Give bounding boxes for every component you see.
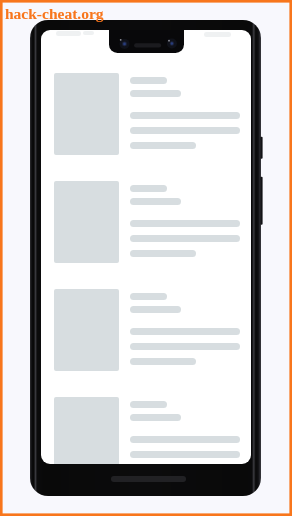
button[interactable]	[41, 289, 251, 397]
staticText: hack-cheat.org	[5, 5, 104, 22]
button[interactable]	[41, 73, 251, 181]
button[interactable]	[41, 397, 251, 464]
button[interactable]	[41, 181, 251, 289]
